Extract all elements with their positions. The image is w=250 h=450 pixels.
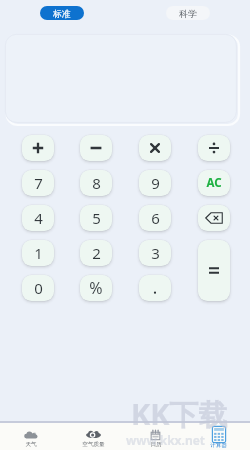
button[interactable]: 6 [139, 205, 171, 231]
button[interactable]: 0 [22, 275, 54, 301]
button[interactable]: 天气 [0, 423, 62, 450]
button[interactable]: Divide [198, 135, 230, 161]
staticText: 5 [92, 208, 101, 228]
button[interactable]: AC [198, 170, 230, 196]
staticText: 1 [34, 243, 43, 263]
staticText: AC [206, 175, 222, 191]
button[interactable]: 3 [139, 240, 171, 266]
staticText: 4 [34, 208, 43, 228]
staticText: 日历 [150, 441, 162, 448]
button[interactable]: Minus [80, 135, 112, 161]
staticText: 6 [151, 208, 160, 228]
staticText: www.kkx.net [126, 432, 206, 448]
button[interactable]: 8 [80, 170, 112, 196]
button[interactable]: 7 [22, 170, 54, 196]
staticText: 2 [92, 243, 101, 263]
button[interactable]: % [80, 275, 112, 301]
button[interactable]: 2 [80, 240, 112, 266]
staticText: 7 [34, 173, 43, 193]
staticText: 9 [151, 173, 160, 193]
button[interactable]: Plus [22, 135, 54, 161]
staticText: % [89, 277, 103, 299]
button[interactable]: Decimal point [139, 275, 171, 301]
staticText: 计算器 [210, 442, 227, 449]
staticText: 3 [151, 243, 160, 263]
button[interactable]: Multiply [139, 135, 171, 161]
button[interactable]: 标准 [40, 6, 84, 20]
staticText: 0 [34, 278, 43, 298]
button[interactable]: Equals [198, 240, 230, 301]
staticText: 标准 [53, 8, 71, 19]
button[interactable]: 4 [22, 205, 54, 231]
staticText: 科学 [179, 8, 197, 19]
staticText: 8 [92, 173, 101, 193]
button[interactable]: 9 [139, 170, 171, 196]
staticText: KK下载 [131, 394, 228, 434]
staticText: 空气质量 [82, 441, 105, 448]
button[interactable]: 空气质量 [62, 423, 124, 450]
button[interactable]: 计算器 [187, 423, 250, 450]
button[interactable]: 日历 [124, 423, 187, 450]
staticText: 天气 [25, 441, 37, 448]
button[interactable]: 1 [22, 240, 54, 266]
button[interactable]: 5 [80, 205, 112, 231]
button[interactable]: Backspace [198, 205, 230, 231]
button[interactable]: 科学 [166, 6, 210, 20]
